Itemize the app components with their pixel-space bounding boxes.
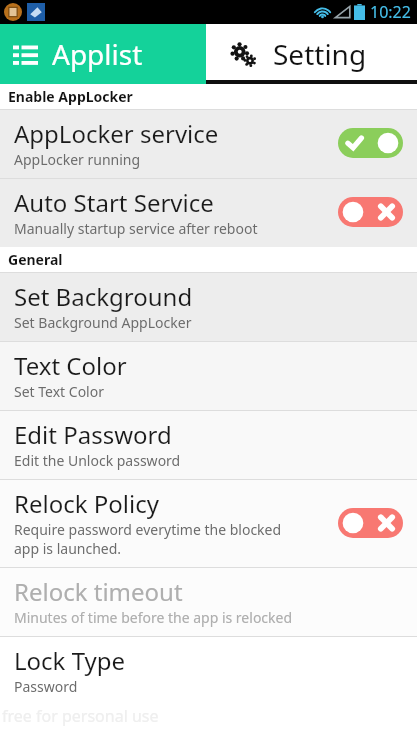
staticText: Set Text Color [14, 382, 104, 401]
staticText: Minutes of time before the app is relock… [14, 608, 293, 627]
button[interactable]: Setting [206, 24, 417, 84]
button[interactable]: Edit Password [0, 411, 417, 479]
staticText: Set Background AppLocker [14, 313, 192, 332]
staticText: Manually startup service after reboot [14, 219, 258, 238]
staticText: free for personal use [2, 705, 159, 727]
button[interactable]: AppLocker service, on [338, 128, 403, 158]
button[interactable]: Applist [0, 24, 206, 84]
staticText: AppLocker service [14, 117, 219, 150]
staticText: Applist [52, 35, 143, 73]
button[interactable]: Relock Policy, off [338, 508, 403, 538]
staticText: AppLocker running [14, 150, 141, 169]
staticText: Enable AppLocker [8, 87, 133, 106]
staticText: Require password everytime the blocked a… [14, 520, 282, 558]
button[interactable]: Auto Start Service, off [338, 197, 403, 227]
staticText: Edit the Unlock password [14, 451, 181, 470]
button[interactable]: Set Background [0, 273, 417, 341]
button[interactable]: Auto Start Service [0, 179, 417, 247]
staticText: Set Background [14, 280, 193, 313]
staticText: Edit Password [14, 418, 172, 451]
staticText: Password [14, 677, 78, 696]
staticText: Relock timeout [14, 575, 183, 608]
staticText: Relock Policy [14, 487, 159, 520]
staticText: Text Color [14, 349, 127, 382]
button[interactable]: Relock Policy [0, 480, 417, 567]
staticText: Lock Type [14, 644, 126, 677]
button[interactable]: AppLocker service [0, 110, 417, 178]
button[interactable]: Lock Type [0, 637, 417, 705]
staticText: 10:22 [370, 1, 411, 23]
button[interactable]: Relock timeout [0, 568, 417, 636]
staticText: Setting [273, 35, 367, 73]
button[interactable]: Text Color [0, 342, 417, 410]
staticText: General [8, 250, 63, 269]
staticText: Auto Start Service [14, 186, 214, 219]
